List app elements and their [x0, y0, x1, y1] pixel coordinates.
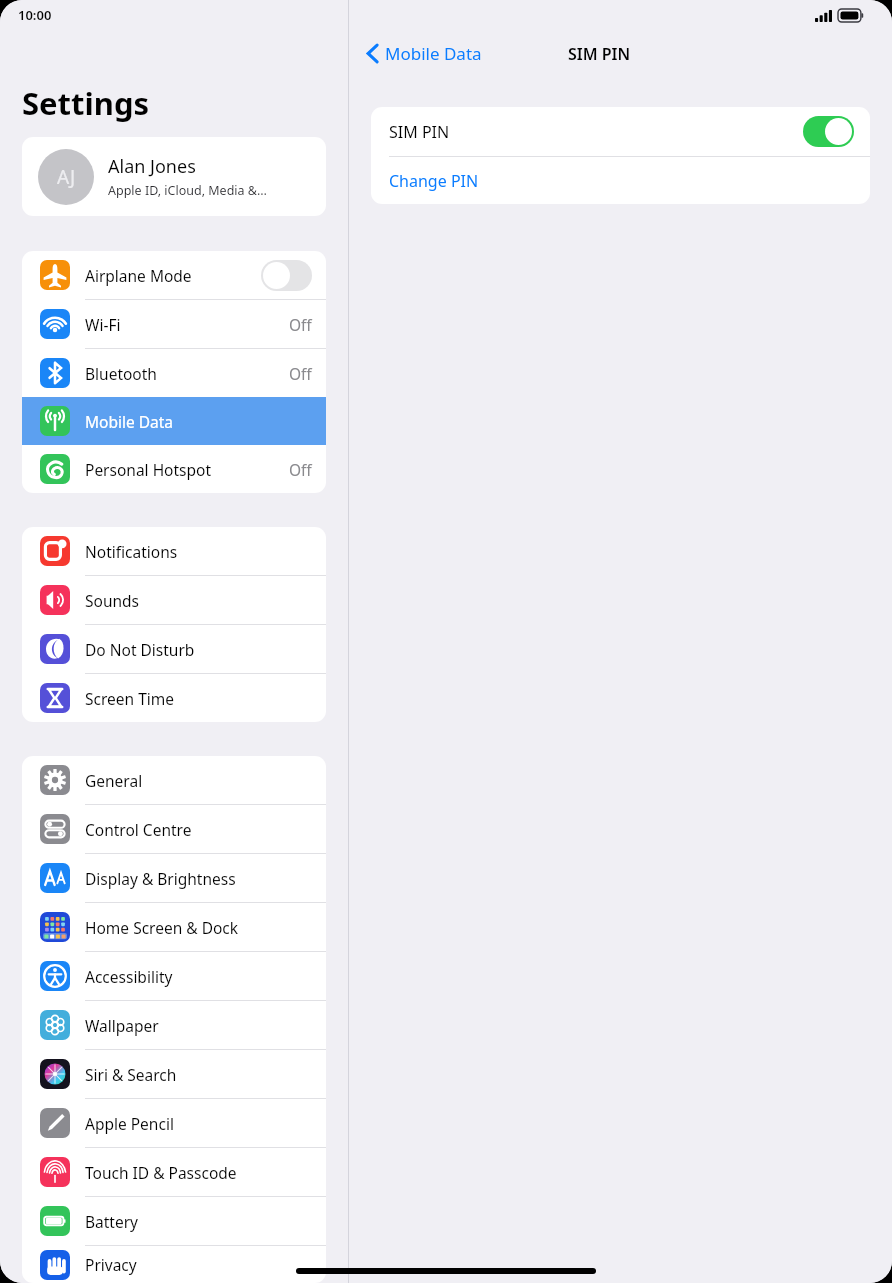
- button[interactable]: Battery: [22, 1197, 326, 1245]
- staticText: Bluetooth: [85, 363, 289, 384]
- staticText: Apple ID, iCloud, Media &…: [108, 182, 267, 199]
- button[interactable]: Apple Pencil: [22, 1099, 326, 1147]
- button[interactable]: Mobile Data: [363, 38, 486, 69]
- button[interactable]: Touch ID & Passcode: [22, 1148, 326, 1196]
- button[interactable]: Privacy: [22, 1246, 326, 1283]
- staticText: Apple Pencil: [85, 1113, 312, 1134]
- button[interactable]: Home Screen & Dock: [22, 903, 326, 951]
- staticText: Wallpaper: [85, 1015, 312, 1036]
- button[interactable]: Airplane Mode: [22, 251, 326, 299]
- button[interactable]: Toggle on: [803, 116, 854, 147]
- staticText: Accessibility: [85, 966, 312, 987]
- staticText: SIM PIN: [389, 121, 803, 143]
- staticText: Mobile Data: [385, 42, 482, 65]
- staticText: Off: [289, 459, 312, 480]
- button[interactable]: Notifications: [22, 527, 326, 575]
- staticText: Home Screen & Dock: [85, 917, 312, 938]
- button[interactable]: Personal Hotspot: [22, 445, 326, 493]
- button[interactable]: Mobile Data: [22, 397, 326, 445]
- button[interactable]: Wallpaper: [22, 1001, 326, 1049]
- staticText: SIM PIN: [568, 43, 631, 65]
- staticText: Personal Hotspot: [85, 459, 289, 480]
- staticText: Mobile Data: [85, 411, 312, 432]
- button[interactable]: Do Not Disturb: [22, 625, 326, 673]
- staticText: Off: [289, 363, 312, 384]
- staticText: Battery: [85, 1211, 312, 1232]
- staticText: Settings: [22, 82, 150, 124]
- staticText: Do Not Disturb: [85, 639, 312, 660]
- staticText: Control Centre: [85, 819, 312, 840]
- staticText: Off: [289, 314, 312, 335]
- staticText: Notifications: [85, 541, 312, 562]
- staticText: Change PIN: [389, 170, 479, 192]
- button[interactable]: Siri & Search: [22, 1050, 326, 1098]
- button[interactable]: Toggle off: [261, 260, 312, 291]
- staticText: Screen Time: [85, 688, 312, 709]
- staticText: Airplane Mode: [85, 265, 261, 286]
- button[interactable]: Change PIN: [371, 157, 870, 204]
- button[interactable]: General: [22, 756, 326, 804]
- button[interactable]: AJ: [22, 137, 326, 216]
- staticText: Privacy: [85, 1254, 312, 1275]
- button[interactable]: Wi-Fi: [22, 300, 326, 348]
- button[interactable]: Bluetooth: [22, 349, 326, 397]
- staticText: Siri & Search: [85, 1064, 312, 1085]
- staticText: Wi-Fi: [85, 314, 289, 335]
- button[interactable]: SIM PIN: [371, 107, 870, 156]
- staticText: Display & Brightness: [85, 868, 312, 889]
- staticText: AJ: [57, 164, 76, 190]
- staticText: Sounds: [85, 590, 312, 611]
- staticText: 10:00: [18, 6, 52, 24]
- button[interactable]: Screen Time: [22, 674, 326, 722]
- button[interactable]: Control Centre: [22, 805, 326, 853]
- button[interactable]: Accessibility: [22, 952, 326, 1000]
- staticText: Alan Jones: [108, 154, 196, 179]
- button[interactable]: Display & Brightness: [22, 854, 326, 902]
- staticText: General: [85, 770, 312, 791]
- staticText: Touch ID & Passcode: [85, 1162, 312, 1183]
- button[interactable]: Sounds: [22, 576, 326, 624]
